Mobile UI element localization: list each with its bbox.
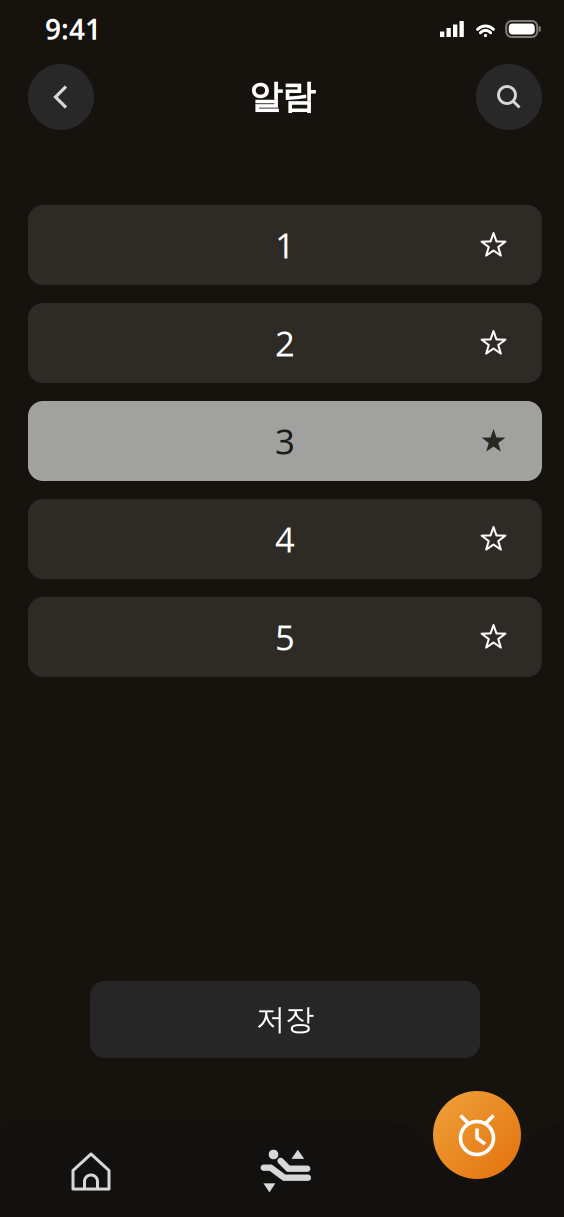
- staticText: 1: [275, 222, 295, 268]
- button[interactable]: Search: [476, 64, 542, 130]
- staticText: 알람: [249, 76, 315, 117]
- button[interactable]: Home: [0, 1122, 188, 1217]
- button[interactable]: Add alarm: [433, 1091, 521, 1179]
- button[interactable]: 4: [28, 499, 542, 579]
- button[interactable]: 저장: [90, 981, 480, 1058]
- staticText: 2: [275, 320, 295, 366]
- button[interactable]: Activity: [188, 1122, 376, 1217]
- button[interactable]: 5: [28, 597, 542, 677]
- staticText: 5: [275, 614, 295, 660]
- staticText: 3: [275, 418, 295, 464]
- button[interactable]: Alarms: [376, 1122, 564, 1217]
- button[interactable]: 1: [28, 205, 542, 285]
- staticText: 9:41: [45, 10, 101, 48]
- button[interactable]: 3: [28, 401, 542, 481]
- button[interactable]: Back: [28, 64, 94, 130]
- staticText: 4: [275, 516, 295, 562]
- staticText: 저장: [256, 1001, 314, 1037]
- button[interactable]: 2: [28, 303, 542, 383]
- staticText: [467, 1154, 473, 1184]
